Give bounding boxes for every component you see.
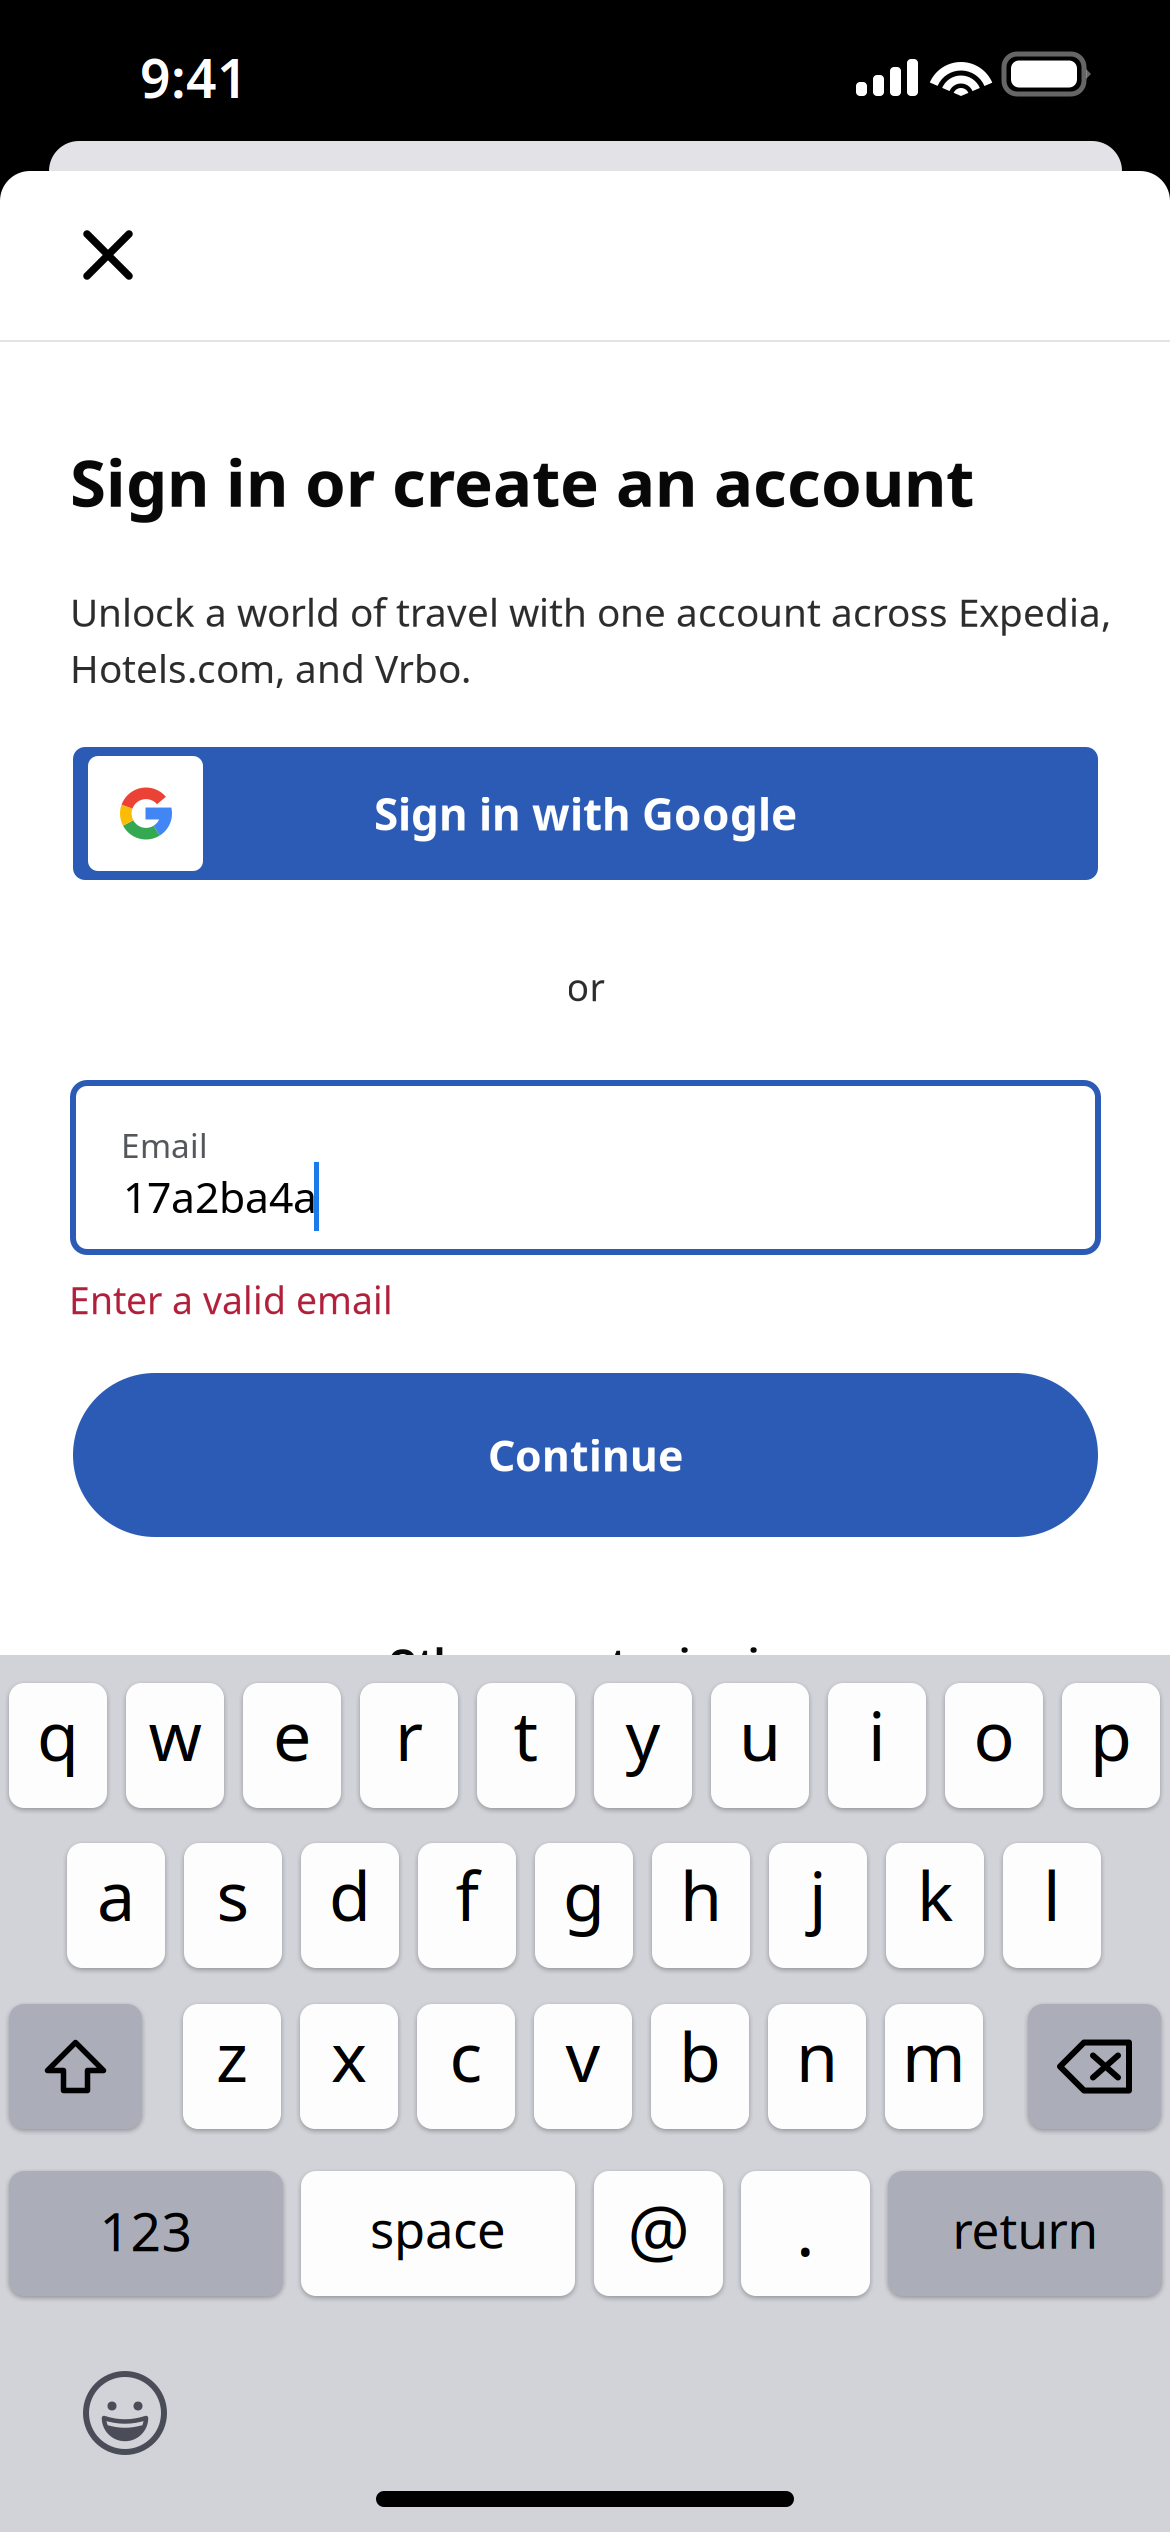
button[interactable]: v <box>534 2004 632 2129</box>
button[interactable]: m <box>885 2004 983 2129</box>
staticText: b <box>679 2010 721 2101</box>
button[interactable]: y <box>594 1683 692 1808</box>
staticText: v <box>565 2010 600 2101</box>
staticText: space <box>370 2195 506 2262</box>
button[interactable]: d <box>301 1843 399 1968</box>
staticText: Unlock a world of travel with one accoun… <box>70 586 1111 694</box>
staticText: Sign in or create an account <box>70 438 974 525</box>
button[interactable]: Close <box>62 209 154 301</box>
button[interactable]: r <box>360 1683 458 1808</box>
button[interactable]: u <box>711 1683 809 1808</box>
staticText: Continue <box>488 1427 683 1483</box>
staticText: Enter a valid email <box>69 1275 393 1325</box>
staticText: return <box>952 2197 1097 2262</box>
staticText: l <box>1043 1849 1061 1940</box>
button[interactable]: Sign in with Google <box>73 747 1098 880</box>
button[interactable]: s <box>184 1843 282 1968</box>
staticText: c <box>449 2010 482 2101</box>
button[interactable]: Shift <box>9 2004 142 2129</box>
staticText: r <box>395 1689 423 1780</box>
button[interactable]: 123 <box>9 2171 283 2296</box>
button[interactable]: Delete <box>1028 2004 1161 2129</box>
button[interactable]: . <box>741 2171 870 2296</box>
staticText: s <box>216 1849 249 1940</box>
staticText: . <box>796 2183 815 2276</box>
staticText: u <box>739 1689 781 1780</box>
button[interactable]: Emoji <box>80 2368 170 2458</box>
button[interactable]: o <box>945 1683 1043 1808</box>
button[interactable]: l <box>1003 1843 1101 1968</box>
staticText: x <box>331 2010 367 2101</box>
button[interactable]: return <box>888 2171 1162 2296</box>
staticText: m <box>902 2010 966 2101</box>
staticText: p <box>1090 1689 1132 1780</box>
staticText: 17a2ba4a <box>123 1168 317 1225</box>
staticText: g <box>563 1849 605 1940</box>
button[interactable]: k <box>886 1843 984 1968</box>
button[interactable]: c <box>417 2004 515 2129</box>
button[interactable]: a <box>67 1843 165 1968</box>
staticText: k <box>917 1849 953 1940</box>
staticText: e <box>273 1689 311 1780</box>
button[interactable]: @ <box>594 2171 723 2296</box>
staticText: q <box>37 1689 79 1780</box>
staticText: 123 <box>99 2195 192 2266</box>
staticText: o <box>973 1689 1014 1780</box>
button[interactable]: space <box>301 2171 575 2296</box>
button[interactable]: q <box>9 1683 107 1808</box>
staticText: Email <box>121 1123 208 1167</box>
staticText: z <box>216 2010 248 2101</box>
staticText: t <box>513 1689 538 1780</box>
button[interactable]: x <box>300 2004 398 2129</box>
button[interactable]: Continue <box>73 1373 1098 1537</box>
staticText: Other ways to sign in <box>388 1637 783 1687</box>
staticText: n <box>796 2010 838 2101</box>
button[interactable]: j <box>769 1843 867 1968</box>
staticText: j <box>809 1849 827 1940</box>
staticText: f <box>455 1849 478 1940</box>
staticText: y <box>625 1689 660 1780</box>
staticText: w <box>148 1689 201 1780</box>
staticText: 9:41 <box>140 42 248 113</box>
staticText: Sign in with Google <box>374 784 797 843</box>
button[interactable]: n <box>768 2004 866 2129</box>
button[interactable]: z <box>183 2004 281 2129</box>
staticText: i <box>868 1689 886 1780</box>
staticText: a <box>97 1849 135 1940</box>
button[interactable]: p <box>1062 1683 1160 1808</box>
button[interactable]: t <box>477 1683 575 1808</box>
button[interactable]: b <box>651 2004 749 2129</box>
button[interactable]: e <box>243 1683 341 1808</box>
button[interactable]: h <box>652 1843 750 1968</box>
staticText: d <box>329 1849 371 1940</box>
button[interactable]: g <box>535 1843 633 1968</box>
button[interactable]: f <box>418 1843 516 1968</box>
staticText: @ <box>627 2183 689 2276</box>
staticText: or <box>566 962 604 1012</box>
button[interactable]: i <box>828 1683 926 1808</box>
button[interactable]: w <box>126 1683 224 1808</box>
staticText: h <box>680 1849 722 1940</box>
